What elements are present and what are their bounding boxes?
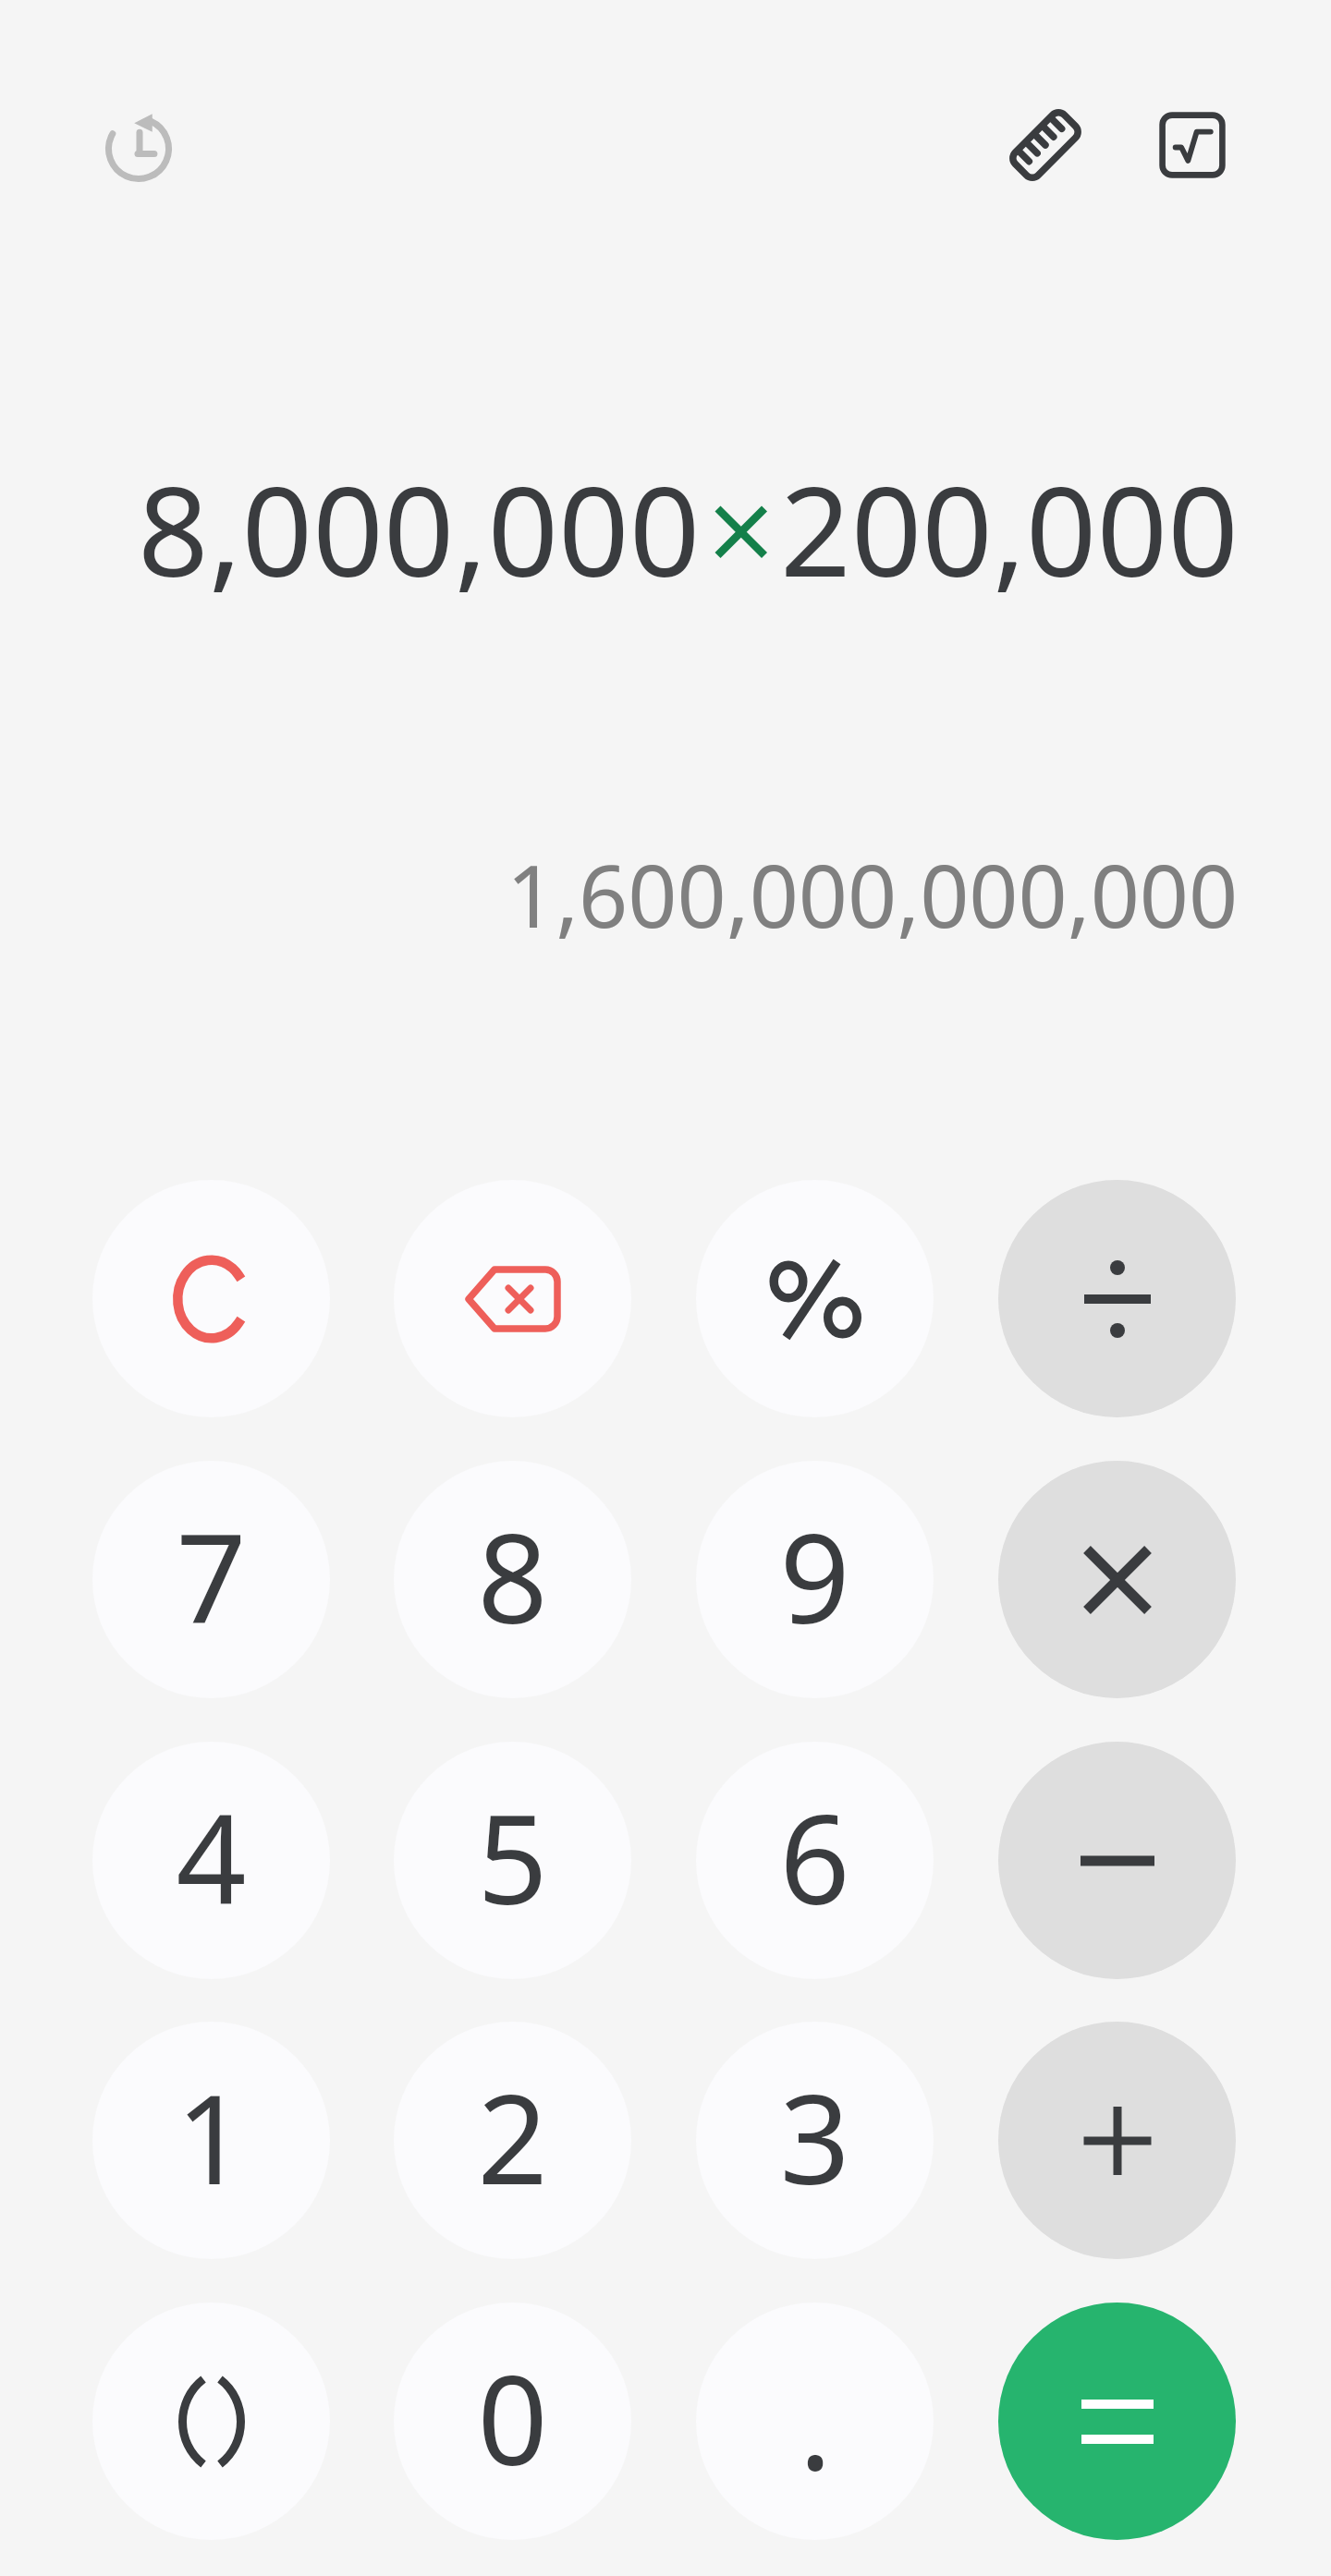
staticText: . — [799, 2339, 832, 2506]
staticText: 9 — [779, 1492, 850, 1659]
button[interactable]: 8 — [394, 1461, 631, 1698]
staticText: 1,600,000,000,000 — [507, 836, 1239, 954]
button[interactable]: 1 — [92, 2022, 330, 2259]
staticText: 2 — [477, 2053, 548, 2220]
button[interactable]: Parentheses — [92, 2303, 330, 2540]
button[interactable]: Multiply — [998, 1461, 1236, 1698]
button[interactable]: 6 — [696, 1742, 934, 1979]
staticText: 200,000 — [780, 444, 1239, 614]
button[interactable]: 0 — [394, 2303, 631, 2540]
button[interactable]: 4 — [92, 1742, 330, 1979]
staticText: 8 — [477, 1492, 548, 1659]
button[interactable]: Plus — [998, 2022, 1236, 2259]
button[interactable]: Percent — [696, 1180, 934, 1417]
button[interactable]: History — [74, 81, 203, 211]
staticText: 4 — [176, 1773, 247, 1940]
button[interactable]: 3 — [696, 2022, 934, 2259]
staticText: 7 — [176, 1492, 247, 1659]
staticText: 0 — [477, 2334, 548, 2501]
button[interactable]: Scientific calculator — [1128, 80, 1257, 210]
button[interactable]: 5 — [394, 1742, 631, 1979]
button[interactable]: Equals — [998, 2303, 1236, 2540]
button[interactable]: . — [696, 2303, 934, 2540]
button[interactable]: 2 — [394, 2022, 631, 2259]
button[interactable]: Backspace — [394, 1180, 631, 1417]
staticText: 6 — [779, 1773, 850, 1940]
staticText: 1 — [176, 2053, 247, 2220]
button[interactable]: 7 — [92, 1461, 330, 1698]
staticText: 5 — [477, 1773, 548, 1940]
button[interactable]: 9 — [696, 1461, 934, 1698]
button[interactable]: Unit converter — [981, 80, 1110, 210]
button[interactable]: Divide — [998, 1180, 1236, 1417]
staticText: 3 — [779, 2053, 850, 2220]
button[interactable]: Minus — [998, 1742, 1236, 1979]
staticText: 8,000,000 — [138, 444, 701, 614]
button[interactable]: Clear — [92, 1180, 330, 1417]
